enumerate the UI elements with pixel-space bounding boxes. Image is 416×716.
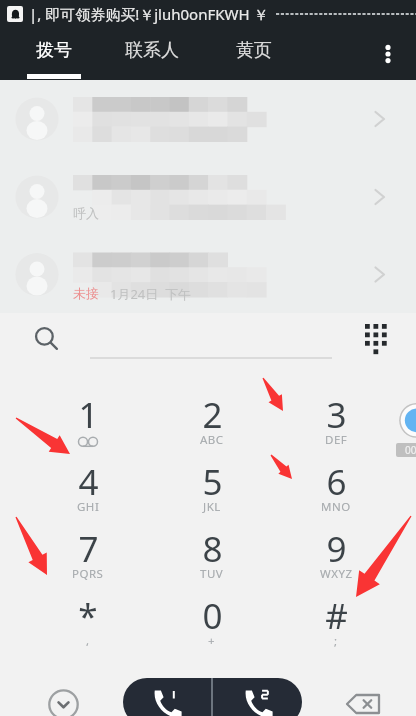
staticText: 0: [202, 592, 223, 640]
staticText: DEF: [325, 432, 348, 448]
button[interactable]: [0, 80, 416, 158]
staticText: JKL: [203, 499, 221, 515]
button[interactable]: 4: [26, 457, 150, 524]
staticText: |, 即可领券购买!￥jluh0onFKWH ￥: [29, 4, 269, 24]
button[interactable]: 1: [26, 390, 150, 457]
staticText: 拨号: [36, 39, 72, 62]
button[interactable]: Search: [23, 315, 71, 363]
staticText: MNO: [321, 499, 351, 515]
button[interactable]: Call with SIM 2: [213, 678, 302, 716]
staticText: 5: [202, 458, 223, 506]
staticText: 6: [326, 458, 347, 506]
staticText: 9: [326, 525, 347, 573]
staticText: 4: [78, 458, 99, 506]
staticText: 联系人: [125, 39, 179, 62]
staticText: +: [208, 633, 216, 649]
button[interactable]: 拨号: [10, 28, 98, 80]
button[interactable]: 3: [274, 390, 398, 457]
button[interactable]: 8: [150, 524, 274, 591]
button[interactable]: #: [274, 591, 398, 658]
button[interactable]: 联系人: [108, 28, 196, 80]
staticText: PQRS: [72, 566, 104, 582]
staticText: TUV: [200, 566, 224, 582]
button[interactable]: Delete: [339, 680, 387, 716]
button[interactable]: 呼入: [0, 158, 416, 236]
staticText: 1: [78, 391, 99, 439]
staticText: 00:00: [405, 443, 416, 457]
button[interactable]: 6: [274, 457, 398, 524]
staticText: 1月24日 下午: [110, 285, 192, 303]
staticText: WXYZ: [320, 566, 353, 582]
staticText: 7: [78, 525, 99, 573]
staticText: 黄页: [236, 39, 272, 62]
staticText: 未接: [73, 285, 99, 301]
button[interactable]: 7: [26, 524, 150, 591]
staticText: #: [325, 592, 348, 640]
staticText: ABC: [200, 432, 224, 448]
staticText: 2: [202, 391, 223, 439]
button[interactable]: More options: [364, 30, 412, 78]
button[interactable]: 0: [150, 591, 274, 658]
button[interactable]: Show keypad: [352, 311, 400, 359]
staticText: GHI: [77, 499, 100, 515]
button[interactable]: 2: [150, 390, 274, 457]
button[interactable]: Call timer: [392, 403, 416, 459]
staticText: 3: [326, 391, 347, 439]
button[interactable]: Hide keypad: [39, 680, 87, 716]
staticText: 8: [202, 525, 223, 573]
button[interactable]: 黄页: [210, 28, 298, 80]
button[interactable]: 未接: [0, 236, 416, 313]
staticText: 呼入: [73, 205, 99, 221]
button[interactable]: 9: [274, 524, 398, 591]
staticText: ;: [334, 633, 338, 649]
button[interactable]: Call with SIM 1: [123, 678, 211, 716]
staticText: ,: [86, 633, 90, 649]
staticText: *: [78, 592, 98, 640]
button[interactable]: *: [26, 591, 150, 658]
button[interactable]: 5: [150, 457, 274, 524]
